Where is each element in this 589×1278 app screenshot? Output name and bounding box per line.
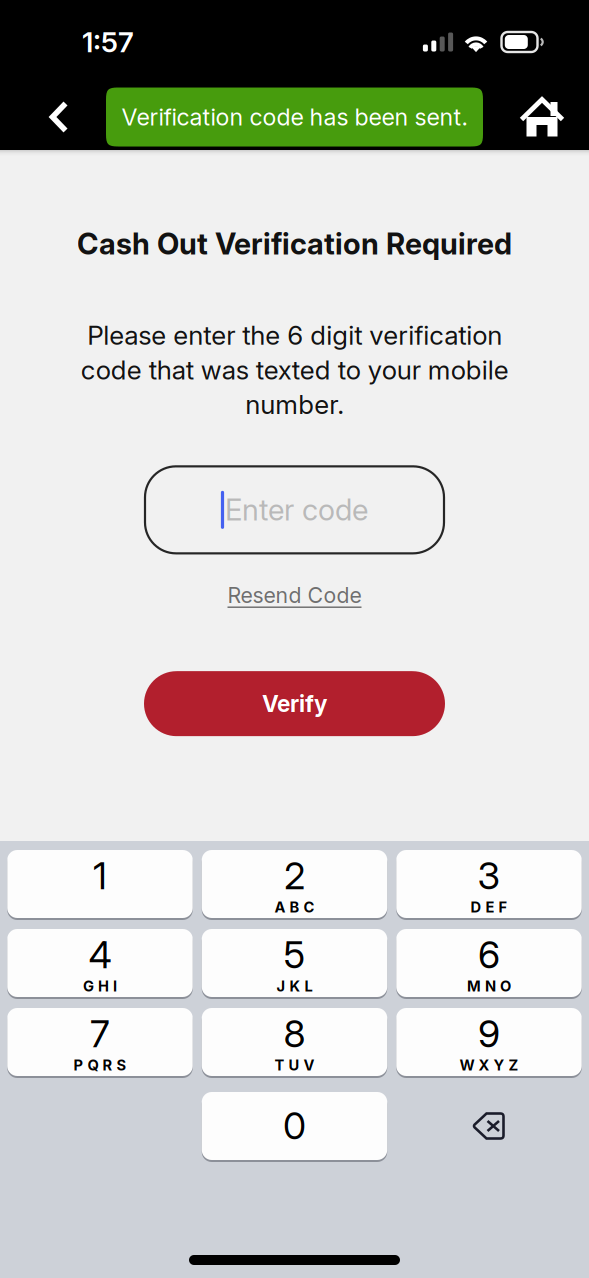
button[interactable]: 7 [7,1007,193,1077]
staticText: T U V [274,1056,314,1074]
button[interactable]: Back [0,84,86,150]
staticText: Verify [262,690,327,717]
button[interactable]: 8 [202,1007,387,1077]
staticText: M N O [467,977,511,995]
button[interactable]: Resend Code [217,576,371,614]
staticText: 2 [284,853,305,898]
staticText: 6 [478,932,500,977]
staticText: Cash Out Verification Required [77,226,512,261]
button[interactable]: 1 [7,849,193,919]
button[interactable]: Verify [144,671,445,736]
staticText: Resend Code [227,582,361,608]
staticText: D E F [470,898,507,916]
staticText: P Q R S [73,1056,126,1074]
staticText: Please enter the 6 digit verification co… [80,319,508,420]
button[interactable]: Home [511,84,589,150]
staticText: W X Y Z [459,1056,518,1074]
staticText: 1:57 [82,25,134,59]
button[interactable]: Enter code [145,466,444,553]
button[interactable]: 5 [202,928,387,998]
staticText: Enter code [225,492,368,528]
staticText: 8 [283,1011,305,1056]
button[interactable]: Delete [396,1092,582,1160]
staticText: 4 [88,932,111,977]
staticText: A B C [274,898,314,916]
button[interactable]: 4 [7,928,193,998]
staticText: 5 [283,932,305,977]
staticText: 3 [477,853,500,898]
staticText: G H I [83,977,117,995]
button[interactable]: 6 [396,928,582,998]
staticText: 7 [90,1011,110,1056]
button[interactable]: 0 [202,1091,387,1161]
button[interactable]: 3 [396,849,582,919]
button[interactable]: 9 [396,1007,582,1077]
button[interactable]: 2 [202,849,387,919]
staticText: J K L [276,977,312,995]
staticText: Verification code has been sent. [121,103,467,131]
staticText: 1 [93,853,107,898]
staticText: 0 [283,1103,306,1148]
staticText: 9 [478,1011,500,1056]
